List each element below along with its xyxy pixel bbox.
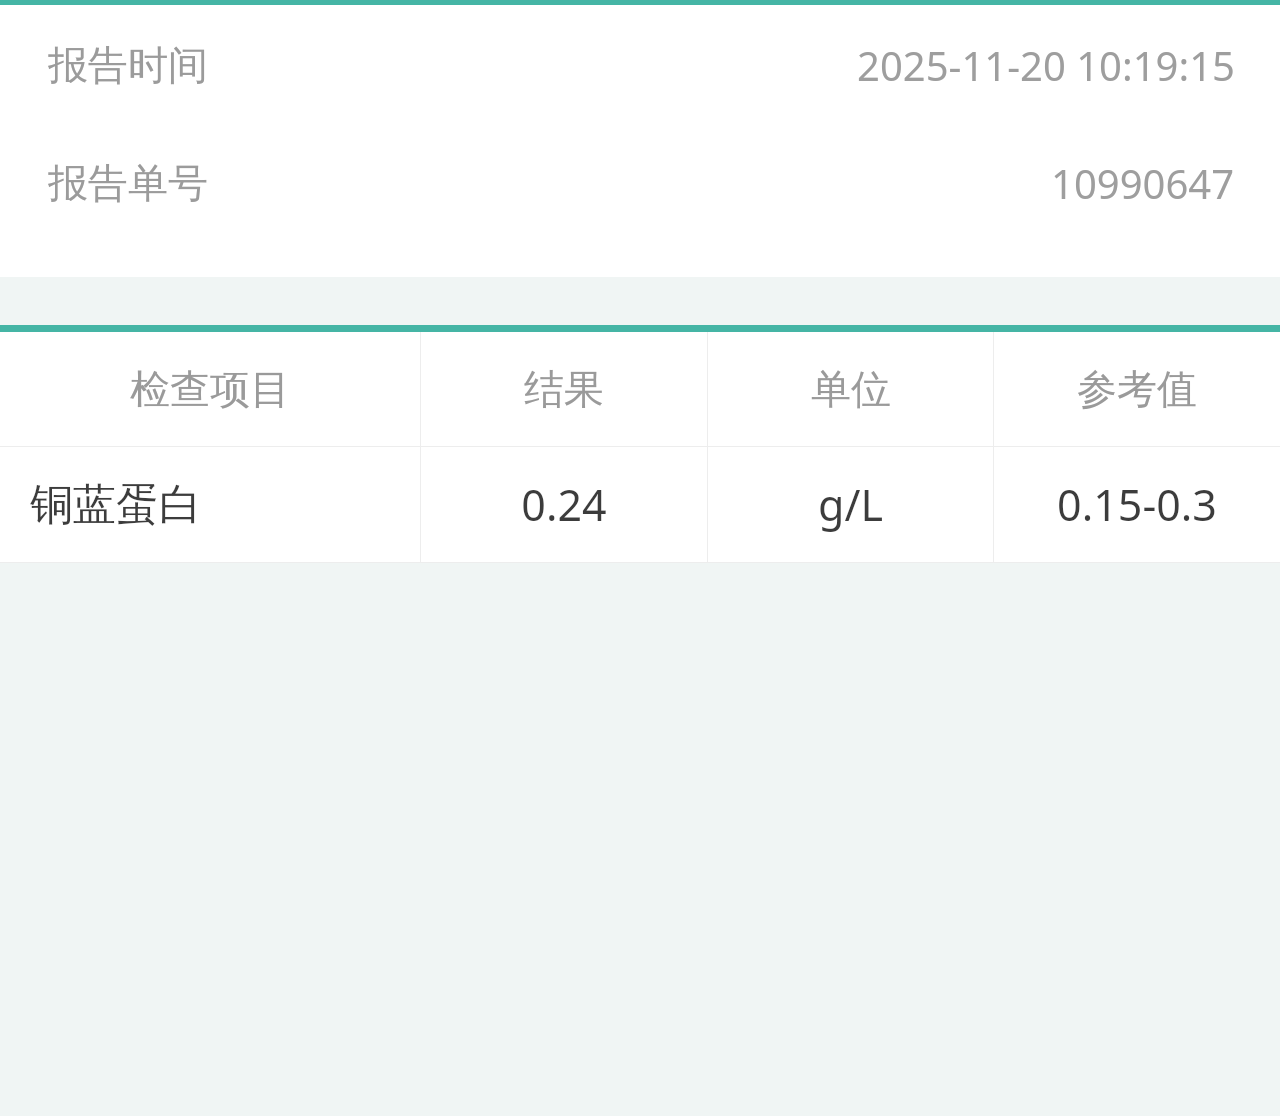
staticText: 铜蓝蛋白	[30, 478, 202, 532]
staticText: 检查项目	[130, 364, 290, 414]
button[interactable]: 检查项目	[0, 332, 1280, 446]
staticText: 结果	[524, 364, 604, 414]
staticText: 10990647	[1051, 156, 1235, 210]
staticText: g/L	[818, 475, 883, 534]
staticText: 报告时间	[48, 40, 208, 90]
staticText: 参考值	[1077, 364, 1197, 414]
staticText: 0.15-0.3	[1057, 475, 1217, 534]
staticText: 单位	[811, 364, 891, 414]
button[interactable]: 报告单号	[0, 153, 1280, 213]
staticText: 0.24	[521, 475, 607, 534]
button[interactable]: 报告时间	[0, 35, 1280, 95]
staticText: 报告单号	[48, 158, 208, 208]
staticText: 2025-11-20 10:19:15	[857, 38, 1235, 92]
button[interactable]: 铜蓝蛋白	[0, 447, 1280, 562]
